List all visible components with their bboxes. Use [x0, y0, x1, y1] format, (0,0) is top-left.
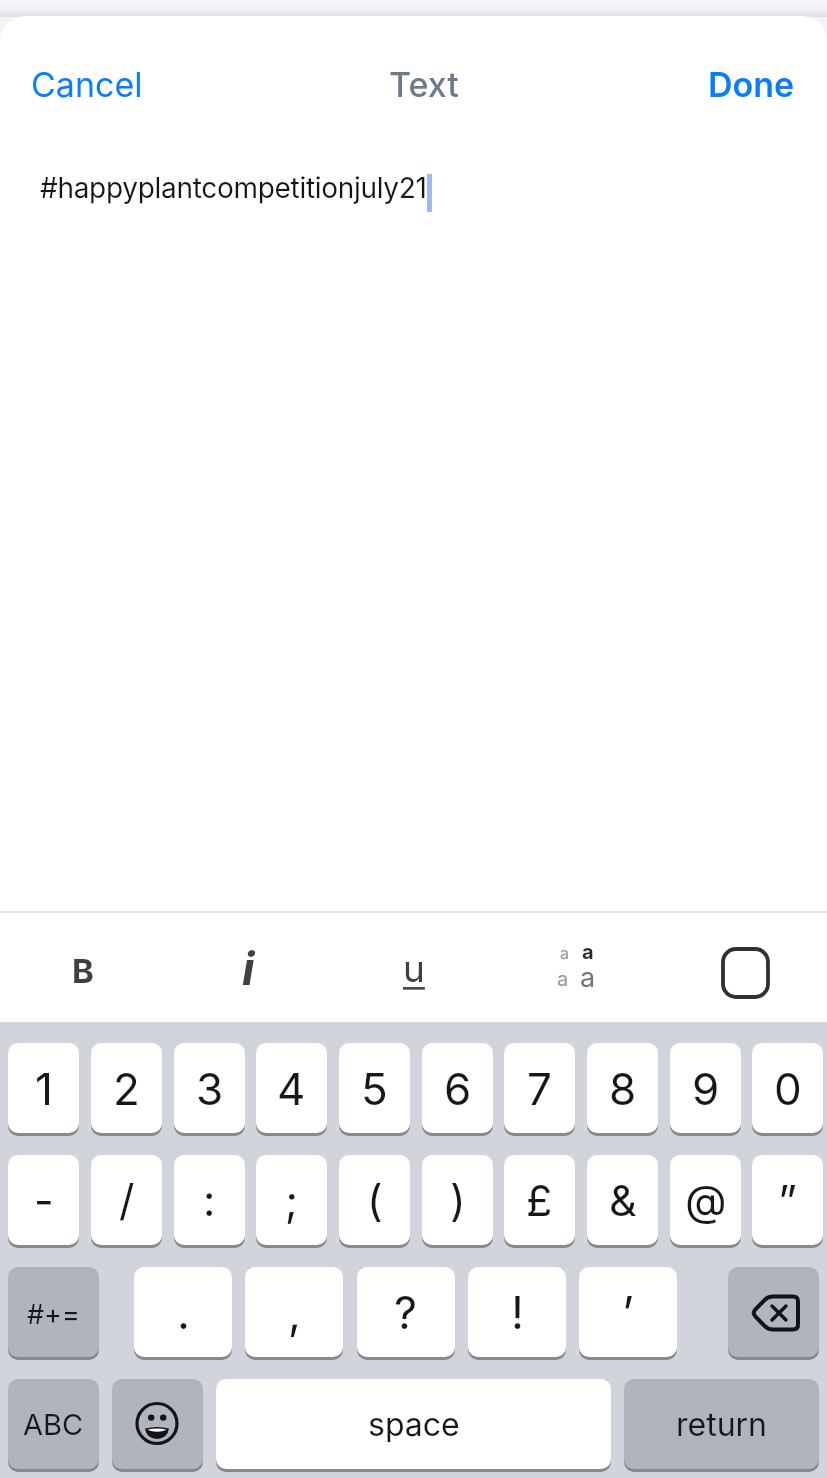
- staticText: a: [580, 961, 596, 994]
- button[interactable]: ,: [245, 1267, 343, 1357]
- staticText: space: [368, 1405, 460, 1444]
- button[interactable]: (: [339, 1155, 410, 1245]
- button[interactable]: !: [468, 1267, 566, 1357]
- button[interactable]: @: [670, 1155, 741, 1245]
- button[interactable]: 2: [91, 1043, 162, 1133]
- staticText: (: [367, 1174, 383, 1226]
- staticText: 8: [609, 1062, 637, 1115]
- button[interactable]: 7: [504, 1043, 575, 1133]
- staticText: ;: [285, 1174, 298, 1226]
- staticText: Done: [708, 64, 795, 105]
- staticText: a: [582, 940, 594, 964]
- button[interactable]: space: [216, 1379, 611, 1469]
- staticText: Text: [389, 64, 459, 105]
- staticText: Cancel: [31, 64, 143, 105]
- button[interactable]: ABC: [8, 1379, 99, 1469]
- button[interactable]: [716, 942, 774, 1002]
- staticText: return: [676, 1405, 768, 1444]
- staticText: /: [119, 1174, 135, 1226]
- button[interactable]: ): [422, 1155, 493, 1245]
- button[interactable]: .: [134, 1267, 232, 1357]
- button[interactable]: [112, 1379, 203, 1469]
- staticText: a: [560, 943, 569, 962]
- button[interactable]: 4: [256, 1043, 327, 1133]
- staticText: 5: [361, 1062, 388, 1115]
- staticText: 1: [35, 1062, 53, 1115]
- staticText: u: [403, 946, 425, 991]
- button[interactable]: 1: [8, 1043, 79, 1133]
- button[interactable]: -: [8, 1155, 79, 1245]
- button[interactable]: [728, 1267, 819, 1357]
- staticText: :: [203, 1174, 216, 1226]
- button[interactable]: 8: [587, 1043, 658, 1133]
- staticText: 0: [774, 1062, 802, 1115]
- button[interactable]: Done: [697, 56, 806, 113]
- button[interactable]: /: [91, 1155, 162, 1245]
- staticText: 4: [277, 1062, 306, 1115]
- button[interactable]: u: [352, 925, 476, 1017]
- staticText: ,: [288, 1285, 301, 1339]
- button[interactable]: 3: [174, 1043, 245, 1133]
- button[interactable]: ;: [256, 1155, 327, 1245]
- staticText: a: [557, 967, 569, 991]
- staticText: 3: [196, 1062, 224, 1115]
- button[interactable]: ”: [752, 1155, 823, 1245]
- staticText: ABC: [23, 1407, 84, 1442]
- button[interactable]: £: [504, 1155, 575, 1245]
- staticText: 9: [692, 1062, 720, 1115]
- button[interactable]: Cancel: [20, 56, 154, 113]
- button[interactable]: i: [186, 925, 310, 1017]
- button[interactable]: a: [540, 930, 620, 1010]
- staticText: #happyplantcompetitionjuly21: [40, 171, 427, 205]
- staticText: #+=: [27, 1298, 80, 1331]
- staticText: ): [450, 1174, 466, 1226]
- button[interactable]: &: [587, 1155, 658, 1245]
- staticText: &: [609, 1174, 637, 1226]
- button[interactable]: ?: [357, 1267, 455, 1357]
- button[interactable]: ’: [579, 1267, 677, 1357]
- staticText: ?: [394, 1285, 418, 1339]
- staticText: 2: [113, 1062, 140, 1115]
- staticText: -: [34, 1174, 54, 1226]
- staticText: i: [242, 940, 255, 996]
- button[interactable]: #+=: [8, 1267, 99, 1357]
- button[interactable]: :: [174, 1155, 245, 1245]
- staticText: @: [685, 1174, 727, 1226]
- staticText: .: [177, 1285, 190, 1339]
- button[interactable]: return: [624, 1379, 819, 1469]
- staticText: 6: [444, 1062, 472, 1115]
- button[interactable]: B: [21, 925, 145, 1017]
- staticText: !: [511, 1285, 524, 1339]
- staticText: B: [72, 951, 94, 991]
- staticText: ”: [778, 1174, 797, 1226]
- staticText: ’: [622, 1285, 634, 1339]
- staticText: £: [526, 1174, 553, 1226]
- button[interactable]: 5: [339, 1043, 410, 1133]
- button[interactable]: 0: [752, 1043, 823, 1133]
- button[interactable]: 6: [422, 1043, 493, 1133]
- button[interactable]: 9: [670, 1043, 741, 1133]
- staticText: 7: [527, 1062, 552, 1115]
